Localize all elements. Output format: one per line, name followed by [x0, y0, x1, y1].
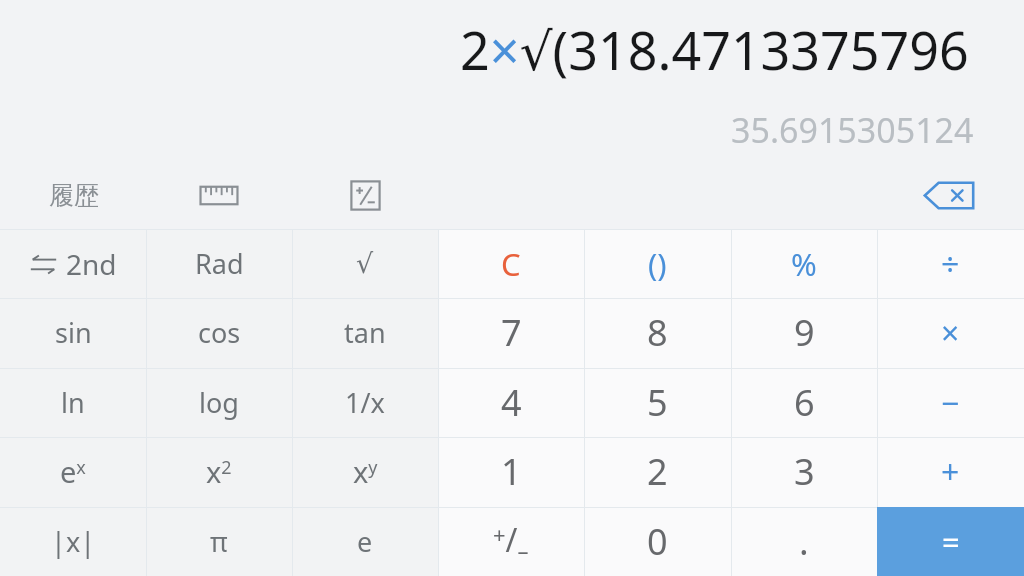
staticText: 9: [794, 308, 815, 357]
staticText: Rad: [195, 245, 244, 282]
button[interactable]: sin: [0, 298, 146, 367]
button[interactable]: ×: [877, 298, 1024, 367]
staticText: |x|: [51, 523, 96, 560]
button[interactable]: x2: [146, 437, 292, 506]
staticText: 0: [647, 517, 668, 566]
staticText: e: [357, 523, 373, 560]
button[interactable]: 6: [731, 368, 877, 437]
button[interactable]: Toggle sign mode: [334, 172, 396, 218]
staticText: 35.6915305124: [731, 107, 974, 153]
button[interactable]: 8: [584, 298, 731, 367]
button[interactable]: tan: [292, 298, 438, 367]
button[interactable]: ÷: [877, 229, 1024, 298]
button[interactable]: .: [731, 507, 877, 576]
staticText: −: [941, 381, 960, 425]
button[interactable]: 3: [731, 437, 877, 506]
button[interactable]: =: [877, 507, 1024, 576]
button[interactable]: cos: [146, 298, 292, 367]
button[interactable]: Rad: [146, 229, 292, 298]
staticText: =: [942, 521, 960, 563]
staticText: π: [210, 523, 228, 560]
staticText: 8: [647, 308, 668, 357]
staticText: 2×√(318.4713375796: [460, 14, 969, 85]
button[interactable]: 0: [584, 507, 731, 576]
staticText: sin: [55, 314, 92, 351]
button[interactable]: xy: [292, 437, 438, 506]
staticText: 5: [647, 378, 668, 427]
staticText: 6: [794, 378, 815, 427]
staticText: ln: [61, 384, 85, 421]
button[interactable]: −: [877, 368, 1024, 437]
button[interactable]: ex: [0, 437, 146, 506]
button[interactable]: C: [438, 229, 584, 298]
staticText: 2nd: [66, 245, 117, 283]
button[interactable]: =: [877, 507, 1024, 576]
button[interactable]: Backspace: [916, 171, 982, 219]
button[interactable]: %: [731, 229, 877, 298]
button[interactable]: 7: [438, 298, 584, 367]
staticText: =: [942, 521, 960, 563]
staticText: 履歴: [49, 180, 99, 211]
staticText: log: [199, 384, 239, 421]
button[interactable]: ln: [0, 368, 146, 437]
button[interactable]: e: [292, 507, 438, 576]
button[interactable]: Unit converter: [186, 172, 252, 218]
staticText: 4: [501, 378, 522, 427]
button[interactable]: 1/x: [292, 368, 438, 437]
staticText: +: [941, 450, 960, 494]
button[interactable]: (): [584, 229, 731, 298]
button[interactable]: 履歴: [36, 172, 112, 218]
button[interactable]: 5: [584, 368, 731, 437]
button[interactable]: 4: [438, 368, 584, 437]
staticText: 1: [501, 447, 522, 496]
staticText: 7: [501, 308, 522, 357]
button[interactable]: 2: [584, 437, 731, 506]
staticText: ÷: [941, 242, 960, 286]
staticText: .: [799, 517, 809, 566]
staticText: ×: [941, 311, 960, 355]
button[interactable]: |x|: [0, 507, 146, 576]
staticText: cos: [198, 314, 241, 351]
button[interactable]: +: [877, 437, 1024, 506]
staticText: √: [356, 248, 374, 279]
staticText: ex: [60, 452, 86, 491]
staticText: +/–: [493, 518, 529, 566]
staticText: x2: [206, 452, 232, 491]
staticText: tan: [344, 314, 386, 351]
staticText: %: [791, 243, 817, 285]
button[interactable]: log: [146, 368, 292, 437]
button[interactable]: +/–: [438, 507, 584, 576]
staticText: 3: [794, 447, 815, 496]
staticText: xy: [353, 452, 378, 491]
button[interactable]: π: [146, 507, 292, 576]
button[interactable]: √: [292, 229, 438, 298]
button[interactable]: 2nd: [0, 229, 146, 298]
button[interactable]: 9: [731, 298, 877, 367]
staticText: 2: [647, 447, 668, 496]
staticText: C: [501, 243, 521, 285]
button[interactable]: 1: [438, 437, 584, 506]
staticText: 1/x: [345, 384, 385, 421]
staticText: (): [648, 243, 667, 285]
